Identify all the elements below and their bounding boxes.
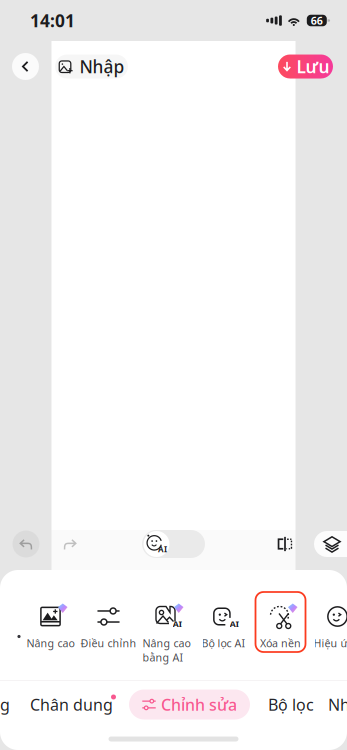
staticText: Điều chỉnh [80, 636, 136, 650]
staticText: AI [172, 618, 182, 630]
button[interactable]: Previous tab [0, 689, 8, 719]
button[interactable]: Chân dung [30, 689, 113, 719]
staticText: Nhập [79, 55, 124, 78]
staticText: 14:01 [30, 9, 75, 32]
staticText: Chân dung [30, 694, 113, 715]
button[interactable]: Nâng cao [22, 570, 79, 650]
button[interactable]: AI mode [142, 530, 205, 558]
button[interactable]: Lưu [278, 54, 333, 78]
button[interactable]: Hiệu ứng [309, 570, 347, 650]
button[interactable]: Xóa nền [252, 570, 309, 650]
staticText: Nâng cao bằng AI [142, 636, 190, 664]
staticText: Hiệu ứng [313, 636, 347, 650]
staticText: g [0, 694, 10, 715]
staticText: Nhãn [328, 694, 347, 715]
button[interactable]: AI [138, 570, 195, 650]
button[interactable]: Nhãn [328, 689, 347, 719]
button[interactable]: Layers [314, 531, 347, 557]
staticText: AI [229, 618, 239, 630]
button[interactable]: Redo [56, 530, 84, 558]
button[interactable]: Compare [271, 530, 299, 558]
staticText: Bộ lọc AI [201, 636, 245, 650]
staticText: Xóa nền [260, 636, 301, 650]
button[interactable]: Undo [12, 530, 40, 558]
staticText: Bộ lọc [268, 694, 314, 715]
staticText: Lưu [296, 55, 329, 78]
staticText: Nâng cao [26, 636, 74, 650]
button[interactable]: Bộ lọc [268, 689, 314, 719]
button[interactable]: Chỉnh sửa [129, 689, 250, 719]
button[interactable]: AI [195, 570, 252, 650]
button[interactable]: Nhập [55, 54, 128, 78]
staticText: Chỉnh sửa [161, 694, 237, 715]
button[interactable]: Back [12, 53, 39, 80]
staticText: 66 [311, 13, 323, 28]
staticText: AI [158, 544, 167, 554]
button[interactable]: Điều chỉnh [79, 570, 138, 650]
